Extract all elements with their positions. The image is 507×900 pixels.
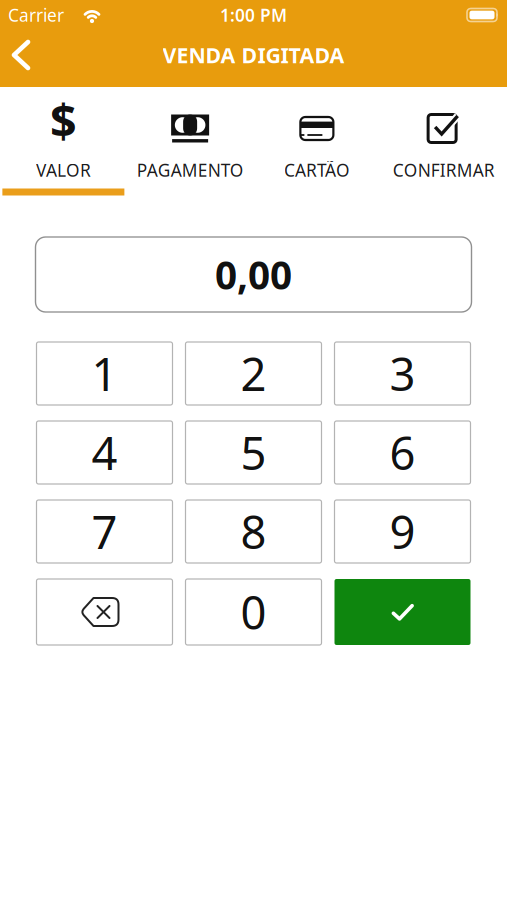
button[interactable]: 4	[36, 421, 172, 484]
staticText: $	[50, 89, 77, 151]
button[interactable]: Confirmar	[334, 579, 470, 645]
button[interactable]: CONFIRMAR	[380, 90, 507, 195]
staticText: 7	[91, 501, 117, 562]
button[interactable]: PAGAMENTO	[127, 90, 254, 195]
staticText: 0	[240, 582, 266, 642]
staticText: PAGAMENTO	[137, 158, 244, 181]
button[interactable]: 1	[36, 342, 172, 405]
button[interactable]: Back	[0, 40, 30, 70]
staticText: 3	[389, 343, 415, 404]
staticText: VALOR	[36, 158, 91, 181]
button[interactable]: 9	[334, 500, 470, 563]
button[interactable]: 5	[185, 421, 321, 484]
staticText: 1	[91, 343, 117, 404]
staticText: 1:00 PM	[220, 3, 287, 26]
button[interactable]: 7	[36, 500, 172, 563]
button[interactable]: CARTÃO	[253, 90, 380, 195]
button[interactable]: 0	[185, 579, 321, 645]
button[interactable]: 3	[334, 342, 470, 405]
button[interactable]: 2	[185, 342, 321, 405]
button[interactable]: Apagar	[36, 579, 172, 645]
staticText: 0,00	[215, 249, 292, 300]
staticText: CONFIRMAR	[393, 158, 495, 181]
staticText: 2	[240, 343, 266, 404]
staticText: 8	[240, 501, 266, 562]
staticText: VENDA DIGITADA	[162, 41, 344, 69]
staticText: 9	[389, 501, 415, 562]
staticText: 5	[240, 422, 266, 483]
button[interactable]: $	[0, 90, 127, 195]
staticText: CARTÃO	[284, 158, 350, 181]
staticText: 6	[389, 422, 415, 483]
button[interactable]: 6	[334, 421, 470, 484]
staticText: Carrier	[8, 3, 64, 26]
button[interactable]: 8	[185, 500, 321, 563]
staticText: 4	[91, 422, 117, 483]
